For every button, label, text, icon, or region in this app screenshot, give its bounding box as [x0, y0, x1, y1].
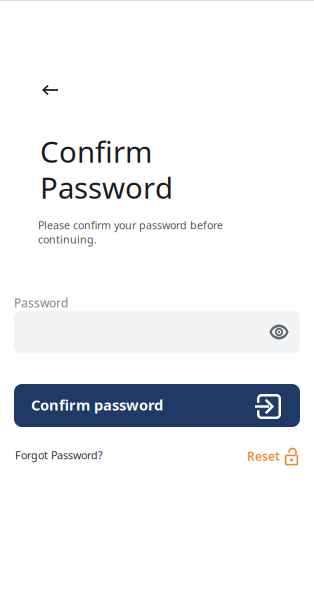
- staticText: Please confirm your password before cont…: [38, 218, 223, 246]
- staticText: Confirm: [40, 132, 152, 171]
- button[interactable]: Back: [29, 72, 71, 108]
- staticText: Password: [40, 168, 173, 207]
- button[interactable]: Confirm password: [14, 384, 300, 427]
- button[interactable]: Forgot Password?: [14, 446, 104, 464]
- staticText: Confirm password: [31, 395, 163, 414]
- button[interactable]: Reset: [247, 446, 300, 466]
- staticText: Reset: [247, 448, 280, 464]
- staticText: Password: [14, 295, 68, 311]
- button[interactable]: Show password: [262, 315, 296, 349]
- staticText: Forgot Password?: [15, 448, 103, 462]
